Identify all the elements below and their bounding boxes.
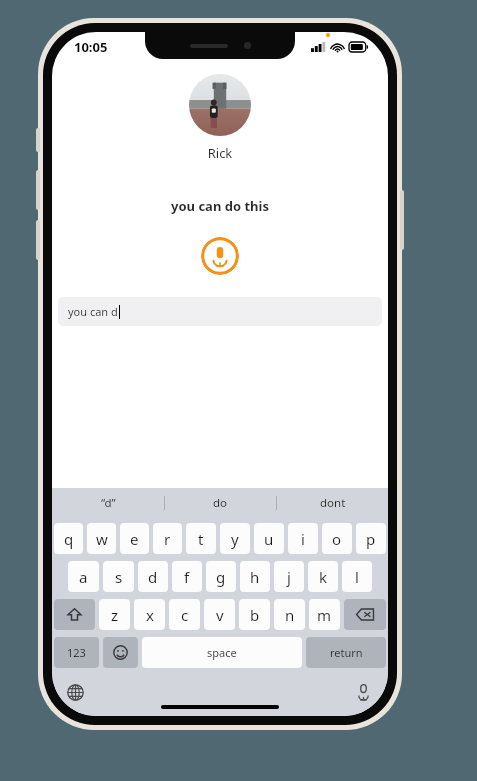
button[interactable]: x	[134, 599, 165, 630]
staticText: b	[250, 605, 260, 625]
staticText: v	[216, 605, 224, 625]
button[interactable]: m	[309, 599, 340, 630]
button[interactable]: do	[165, 488, 276, 518]
staticText: s	[115, 567, 123, 587]
staticText: u	[264, 529, 274, 549]
button[interactable]: t	[186, 523, 216, 554]
staticText: d	[148, 567, 158, 587]
button[interactable]: d	[138, 561, 168, 592]
button[interactable]: a	[68, 561, 99, 592]
button[interactable]: h	[240, 561, 270, 592]
button[interactable]: Shift	[54, 599, 95, 630]
staticText: 10:05	[74, 38, 108, 56]
staticText: y	[231, 529, 239, 549]
button[interactable]: dont	[277, 488, 388, 518]
staticText: w	[96, 529, 108, 549]
staticText: t	[198, 529, 204, 549]
button[interactable]: 123	[54, 637, 99, 668]
button[interactable]: Change keyboard language	[62, 679, 88, 705]
button[interactable]: n	[274, 599, 305, 630]
staticText: return	[330, 645, 363, 660]
staticText: i	[301, 529, 305, 549]
staticText: x	[146, 605, 154, 625]
staticText: j	[287, 567, 291, 587]
button[interactable]: l	[342, 561, 372, 592]
staticText: “d”	[101, 495, 116, 511]
button[interactable]: k	[308, 561, 338, 592]
button[interactable]: c	[169, 599, 200, 630]
button[interactable]: “d”	[52, 488, 164, 518]
button[interactable]: Record voice	[201, 237, 239, 275]
button[interactable]: p	[356, 523, 386, 554]
button[interactable]: Emoji	[103, 637, 138, 668]
button[interactable]: g	[206, 561, 236, 592]
staticText: e	[130, 529, 139, 549]
staticText: c	[181, 605, 189, 625]
button[interactable]: i	[288, 523, 318, 554]
staticText: m	[317, 605, 332, 625]
button[interactable]: o	[322, 523, 352, 554]
staticText: g	[216, 567, 226, 587]
staticText: Rick	[52, 144, 388, 162]
button[interactable]: space	[142, 637, 302, 668]
staticText: k	[319, 567, 328, 587]
staticText: f	[184, 567, 190, 587]
button[interactable]: y	[220, 523, 250, 554]
staticText: q	[64, 529, 74, 549]
staticText: h	[250, 567, 260, 587]
staticText: o	[332, 529, 342, 549]
button[interactable]: e	[120, 523, 149, 554]
button[interactable]: Dictation	[350, 679, 376, 705]
staticText: r	[164, 529, 171, 549]
button[interactable]: f	[172, 561, 202, 592]
button[interactable]: Backspace	[344, 599, 386, 630]
button[interactable]: r	[153, 523, 182, 554]
staticText: you can do this	[52, 197, 388, 215]
button[interactable]: z	[99, 599, 130, 630]
staticText: n	[285, 605, 295, 625]
staticText: z	[111, 605, 119, 625]
staticText: l	[355, 567, 359, 587]
button[interactable]: w	[87, 523, 116, 554]
button[interactable]: s	[103, 561, 134, 592]
button[interactable]: return	[306, 637, 386, 668]
button[interactable]: b	[239, 599, 270, 630]
staticText: dont	[320, 495, 346, 511]
button[interactable]: v	[204, 599, 235, 630]
staticText: p	[366, 529, 376, 549]
button[interactable]: q	[54, 523, 83, 554]
button[interactable]: you can d	[58, 297, 382, 326]
staticText: do	[213, 495, 228, 511]
button[interactable]: u	[254, 523, 284, 554]
staticText: space	[207, 645, 237, 660]
button[interactable]: j	[274, 561, 304, 592]
staticText: you can d	[68, 304, 118, 319]
staticText: a	[79, 567, 88, 587]
staticText: 123	[67, 645, 86, 660]
